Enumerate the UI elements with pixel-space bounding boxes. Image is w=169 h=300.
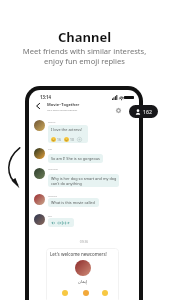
staticText: Movie~Together — [47, 102, 80, 107]
staticText: tanimoto — [48, 168, 58, 171]
button[interactable]: Emoji — [82, 289, 89, 296]
staticText: michelle — [48, 195, 58, 198]
button[interactable]: Avatar — [34, 194, 45, 205]
staticText: sakura — [48, 121, 56, 124]
staticText: aya — [48, 215, 52, 218]
button[interactable]: Emoji — [101, 289, 108, 296]
staticText: What is this movie called — [51, 200, 95, 205]
button[interactable]: Avatar — [34, 168, 45, 179]
staticText: So am I! She is so gorgeous — [51, 156, 100, 161]
button[interactable]: Back — [33, 101, 43, 111]
button[interactable]: Why is her dog so smart and my dog can't… — [48, 174, 119, 187]
staticText: 16 — [57, 137, 61, 142]
button[interactable]: Emoji — [61, 289, 68, 296]
button[interactable]: I love the actress! — [48, 125, 88, 143]
button[interactable]: Avatar — [34, 120, 45, 131]
staticText: 13:14 — [40, 94, 52, 100]
button[interactable]: So am I! She is so gorgeous — [48, 154, 103, 163]
button[interactable] — [48, 218, 74, 227]
button[interactable]: Add reaction — [77, 137, 82, 142]
button[interactable]: What is this movie called — [48, 198, 99, 207]
button[interactable]: Avatar — [34, 214, 45, 225]
button[interactable]: Settings — [113, 105, 124, 116]
staticText: Channel — [0, 28, 169, 46]
staticText: I love the actress! — [51, 127, 82, 132]
button[interactable]: 16 — [51, 137, 61, 142]
staticText: Let's welcome newcomers! — [50, 251, 107, 257]
staticText: Why is her dog so smart and my dog can't… — [51, 176, 117, 186]
button[interactable]: 10 — [64, 137, 74, 142]
button[interactable]: Let's welcome newcomers! — [46, 248, 119, 300]
staticText: Meet friends with similar interests, enj… — [0, 46, 169, 66]
staticText: Let's watch movie together — [47, 108, 78, 111]
staticText: 162 — [143, 108, 152, 115]
staticText: 10 — [70, 137, 74, 142]
staticText: yuri — [48, 148, 53, 151]
staticText: إيمان — [46, 279, 119, 284]
button[interactable]: Avatar — [34, 148, 45, 159]
staticText: 09:36 — [29, 239, 139, 243]
button[interactable]: Members — [129, 105, 158, 118]
